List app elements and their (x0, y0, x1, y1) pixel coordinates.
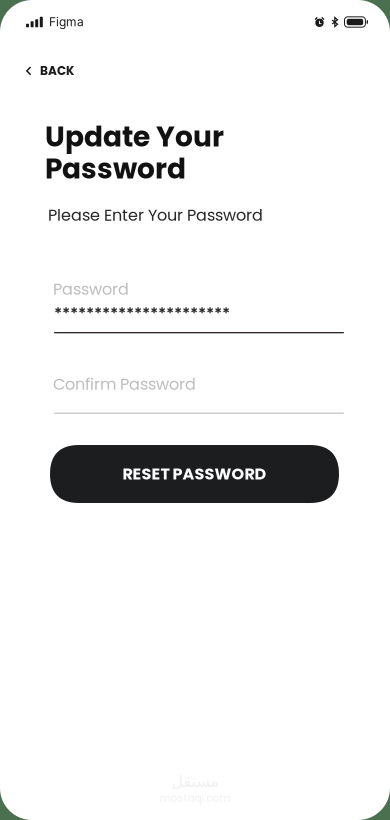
staticText: Please Enter Your Password (48, 204, 263, 226)
staticText: ********************** (54, 304, 230, 322)
button[interactable]: RESET PASSWORD (50, 445, 339, 503)
staticText: Update Your (45, 117, 224, 156)
staticText: Password (53, 278, 129, 300)
button[interactable]: BACK (16, 51, 84, 90)
staticText: Password (45, 149, 186, 188)
staticText: mostaql.com (159, 791, 230, 805)
staticText: مستقل (171, 772, 219, 791)
staticText: Confirm Password (53, 373, 196, 395)
staticText: Figma (49, 15, 84, 29)
staticText: BACK (40, 62, 74, 79)
staticText: RESET PASSWORD (122, 463, 266, 485)
